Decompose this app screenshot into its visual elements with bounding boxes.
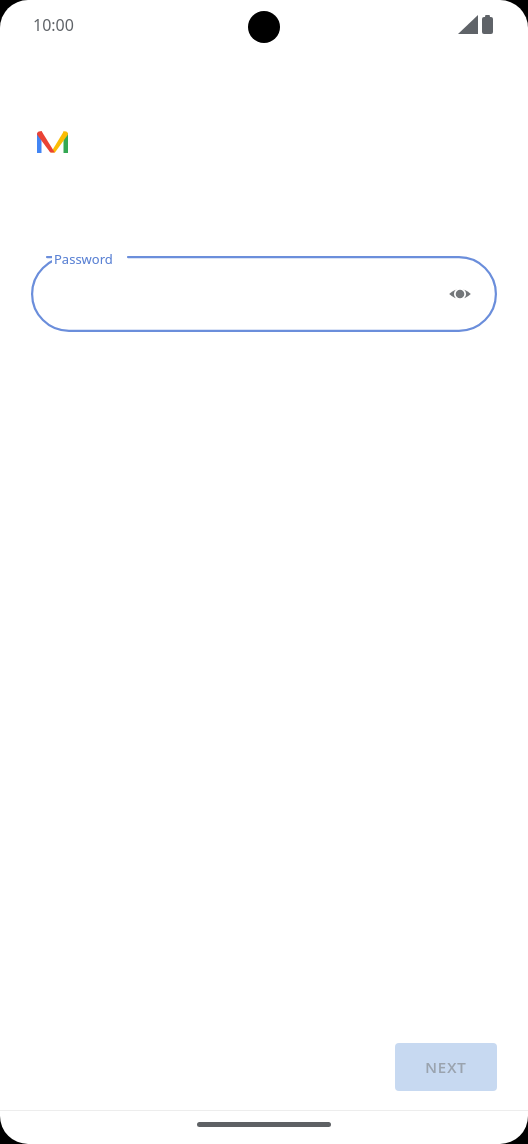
staticText: Password (54, 250, 113, 268)
staticText: NEXT (425, 1057, 467, 1077)
button[interactable]: NEXT (395, 1043, 497, 1091)
button[interactable]: Password (31, 256, 497, 332)
staticText: 10:00 (33, 14, 74, 36)
button[interactable]: Show password (442, 276, 478, 312)
